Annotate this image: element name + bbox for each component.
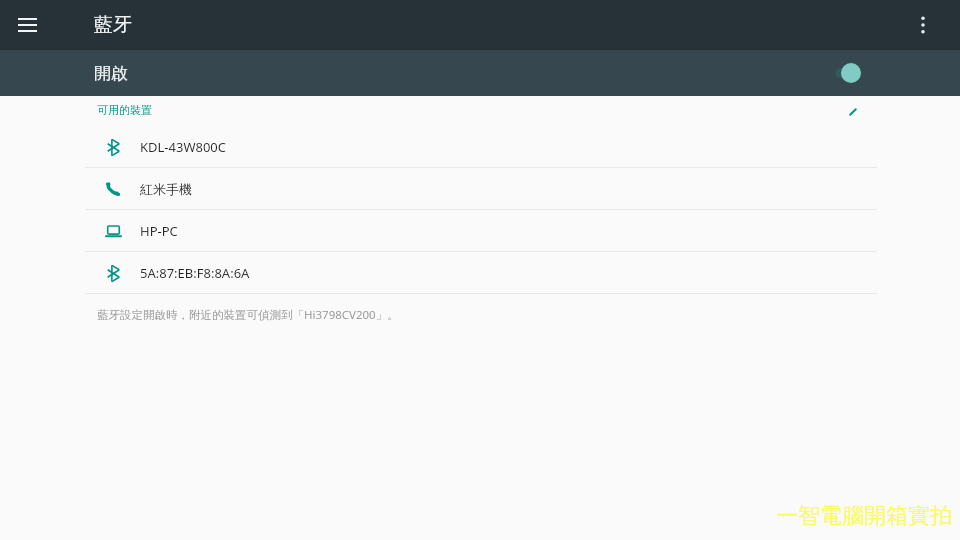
button[interactable]: Navigation menu <box>7 5 47 45</box>
staticText: 開啟 <box>94 63 128 84</box>
button[interactable]: 紅米手機 <box>0 168 960 209</box>
button[interactable]: KDL-43W800C <box>0 126 960 167</box>
button[interactable]: HP-PC <box>0 210 960 251</box>
staticText: KDL-43W800C <box>140 138 227 156</box>
staticText: 藍牙 <box>94 13 132 37</box>
staticText: 可用的裝置 <box>97 103 152 117</box>
button[interactable]: 開啟 <box>0 50 960 96</box>
staticText: HP-PC <box>140 222 178 240</box>
staticText: 5A:87:EB:F8:8A:6A <box>140 264 250 282</box>
button[interactable]: More options <box>903 5 943 45</box>
staticText: 紅米手機 <box>140 181 192 197</box>
staticText: 藍牙設定開啟時，附近的裝置可偵測到「Hi3798CV200」。 <box>97 307 399 323</box>
button[interactable]: 5A:87:EB:F8:8A:6A <box>0 252 960 293</box>
staticText: 一智電腦開箱實拍 <box>776 502 952 530</box>
button[interactable]: Bluetooth on/off toggle <box>830 58 872 88</box>
